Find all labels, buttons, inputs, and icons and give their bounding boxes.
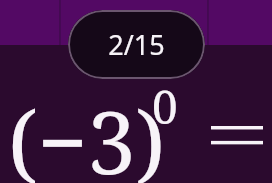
staticText: 2/15 [108,26,165,63]
staticText: 0 [152,75,178,138]
button[interactable]: 2/15 [68,10,205,79]
other: Expression open paren minus 3 close pare… [0,0,272,183]
staticText: (−3) [8,82,166,183]
